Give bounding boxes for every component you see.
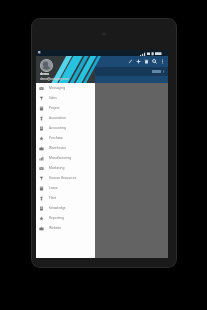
button[interactable]: Marketing bbox=[36, 163, 95, 173]
staticText: Association bbox=[49, 116, 67, 120]
button[interactable]: Leave bbox=[36, 183, 95, 193]
staticText: demo bbox=[40, 72, 50, 76]
staticText: Warehouse bbox=[49, 146, 66, 150]
button[interactable]: Knowledge bbox=[36, 203, 95, 213]
staticText: Sales bbox=[49, 96, 57, 100]
button[interactable]: Messaging bbox=[36, 83, 95, 93]
button[interactable]: Sales bbox=[36, 93, 95, 103]
button[interactable]: Warehouse bbox=[36, 143, 95, 153]
button[interactable]: More options bbox=[158, 56, 166, 67]
button[interactable]: Edit bbox=[126, 56, 134, 67]
button[interactable]: Purchase bbox=[36, 133, 95, 143]
button[interactable]: Reporting bbox=[36, 213, 95, 223]
button[interactable]: demo bbox=[36, 56, 95, 83]
button[interactable] bbox=[40, 59, 53, 72]
staticText: Reporting bbox=[49, 216, 64, 220]
staticText: Fleet bbox=[49, 196, 57, 200]
staticText: Purchase bbox=[49, 136, 63, 140]
button[interactable]: Delete bbox=[142, 56, 150, 67]
staticText: Knowledge bbox=[49, 206, 66, 210]
button[interactable]: Association bbox=[36, 113, 95, 123]
button[interactable]: Manufacturing bbox=[36, 153, 95, 163]
button[interactable]: Search bbox=[150, 56, 158, 67]
staticText: Manufacturing bbox=[49, 156, 72, 160]
staticText: Human Resources bbox=[49, 176, 77, 180]
staticText: Accounting bbox=[49, 126, 66, 130]
staticText: Marketing bbox=[49, 166, 65, 170]
staticText: Messaging bbox=[49, 86, 66, 90]
button[interactable]: Website bbox=[36, 223, 95, 233]
button[interactable]: Human Resources bbox=[36, 173, 95, 183]
button[interactable]: Accounting bbox=[36, 123, 95, 133]
staticText: Leave bbox=[49, 186, 58, 190]
button[interactable]: Add bbox=[134, 56, 142, 67]
button[interactable]: Project bbox=[36, 103, 95, 113]
staticText: Website bbox=[49, 226, 61, 230]
staticText: Project bbox=[49, 106, 60, 110]
button[interactable]: Fleet bbox=[36, 193, 95, 203]
staticText: demo@company.com bbox=[40, 77, 69, 81]
